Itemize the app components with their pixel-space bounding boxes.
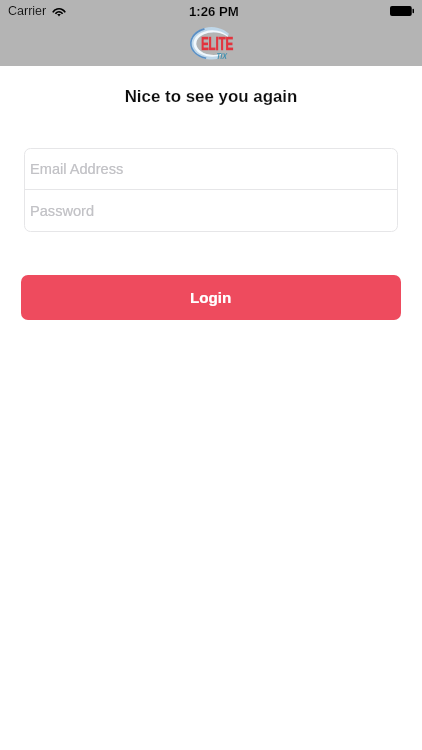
staticText: Carrier [8,4,47,18]
staticText: TIX [216,51,239,60]
staticText: ELITE [201,33,238,54]
button[interactable]: Password [24,190,398,232]
staticText: Nice to see you again [0,87,422,106]
button[interactable]: Email Address [24,148,398,189]
staticText: Login [190,289,232,306]
button[interactable]: Login [21,275,401,320]
staticText: Email Address [30,161,124,177]
staticText: 1:26 PM [189,4,239,19]
staticText: Password [30,203,95,219]
